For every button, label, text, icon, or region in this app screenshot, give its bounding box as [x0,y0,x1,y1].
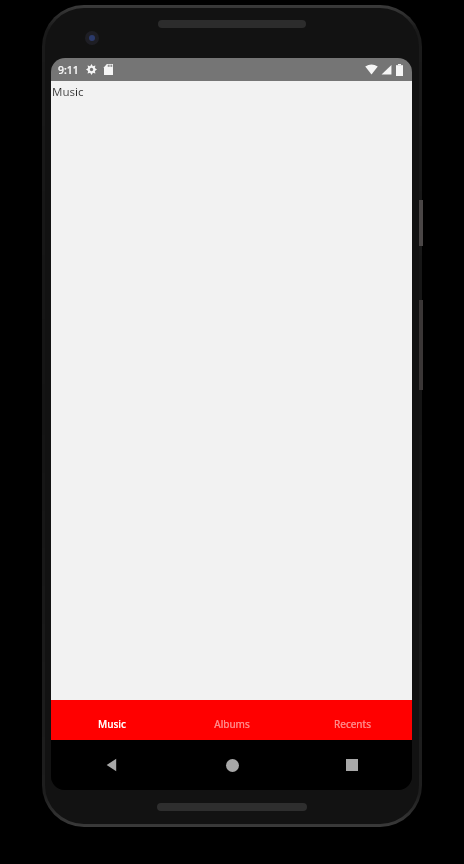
staticText: Albums [214,717,250,731]
staticText: 9:11 [58,63,79,77]
button[interactable]: Recent apps [292,740,412,790]
button[interactable]: Albums [172,700,292,740]
button[interactable]: Recents [292,700,412,740]
staticText: Recents [334,717,371,731]
staticText: Music [52,84,84,100]
staticText: Music [98,717,126,731]
button[interactable]: Back [51,740,172,790]
button[interactable]: Home [172,740,292,790]
button[interactable]: Music [51,700,172,740]
